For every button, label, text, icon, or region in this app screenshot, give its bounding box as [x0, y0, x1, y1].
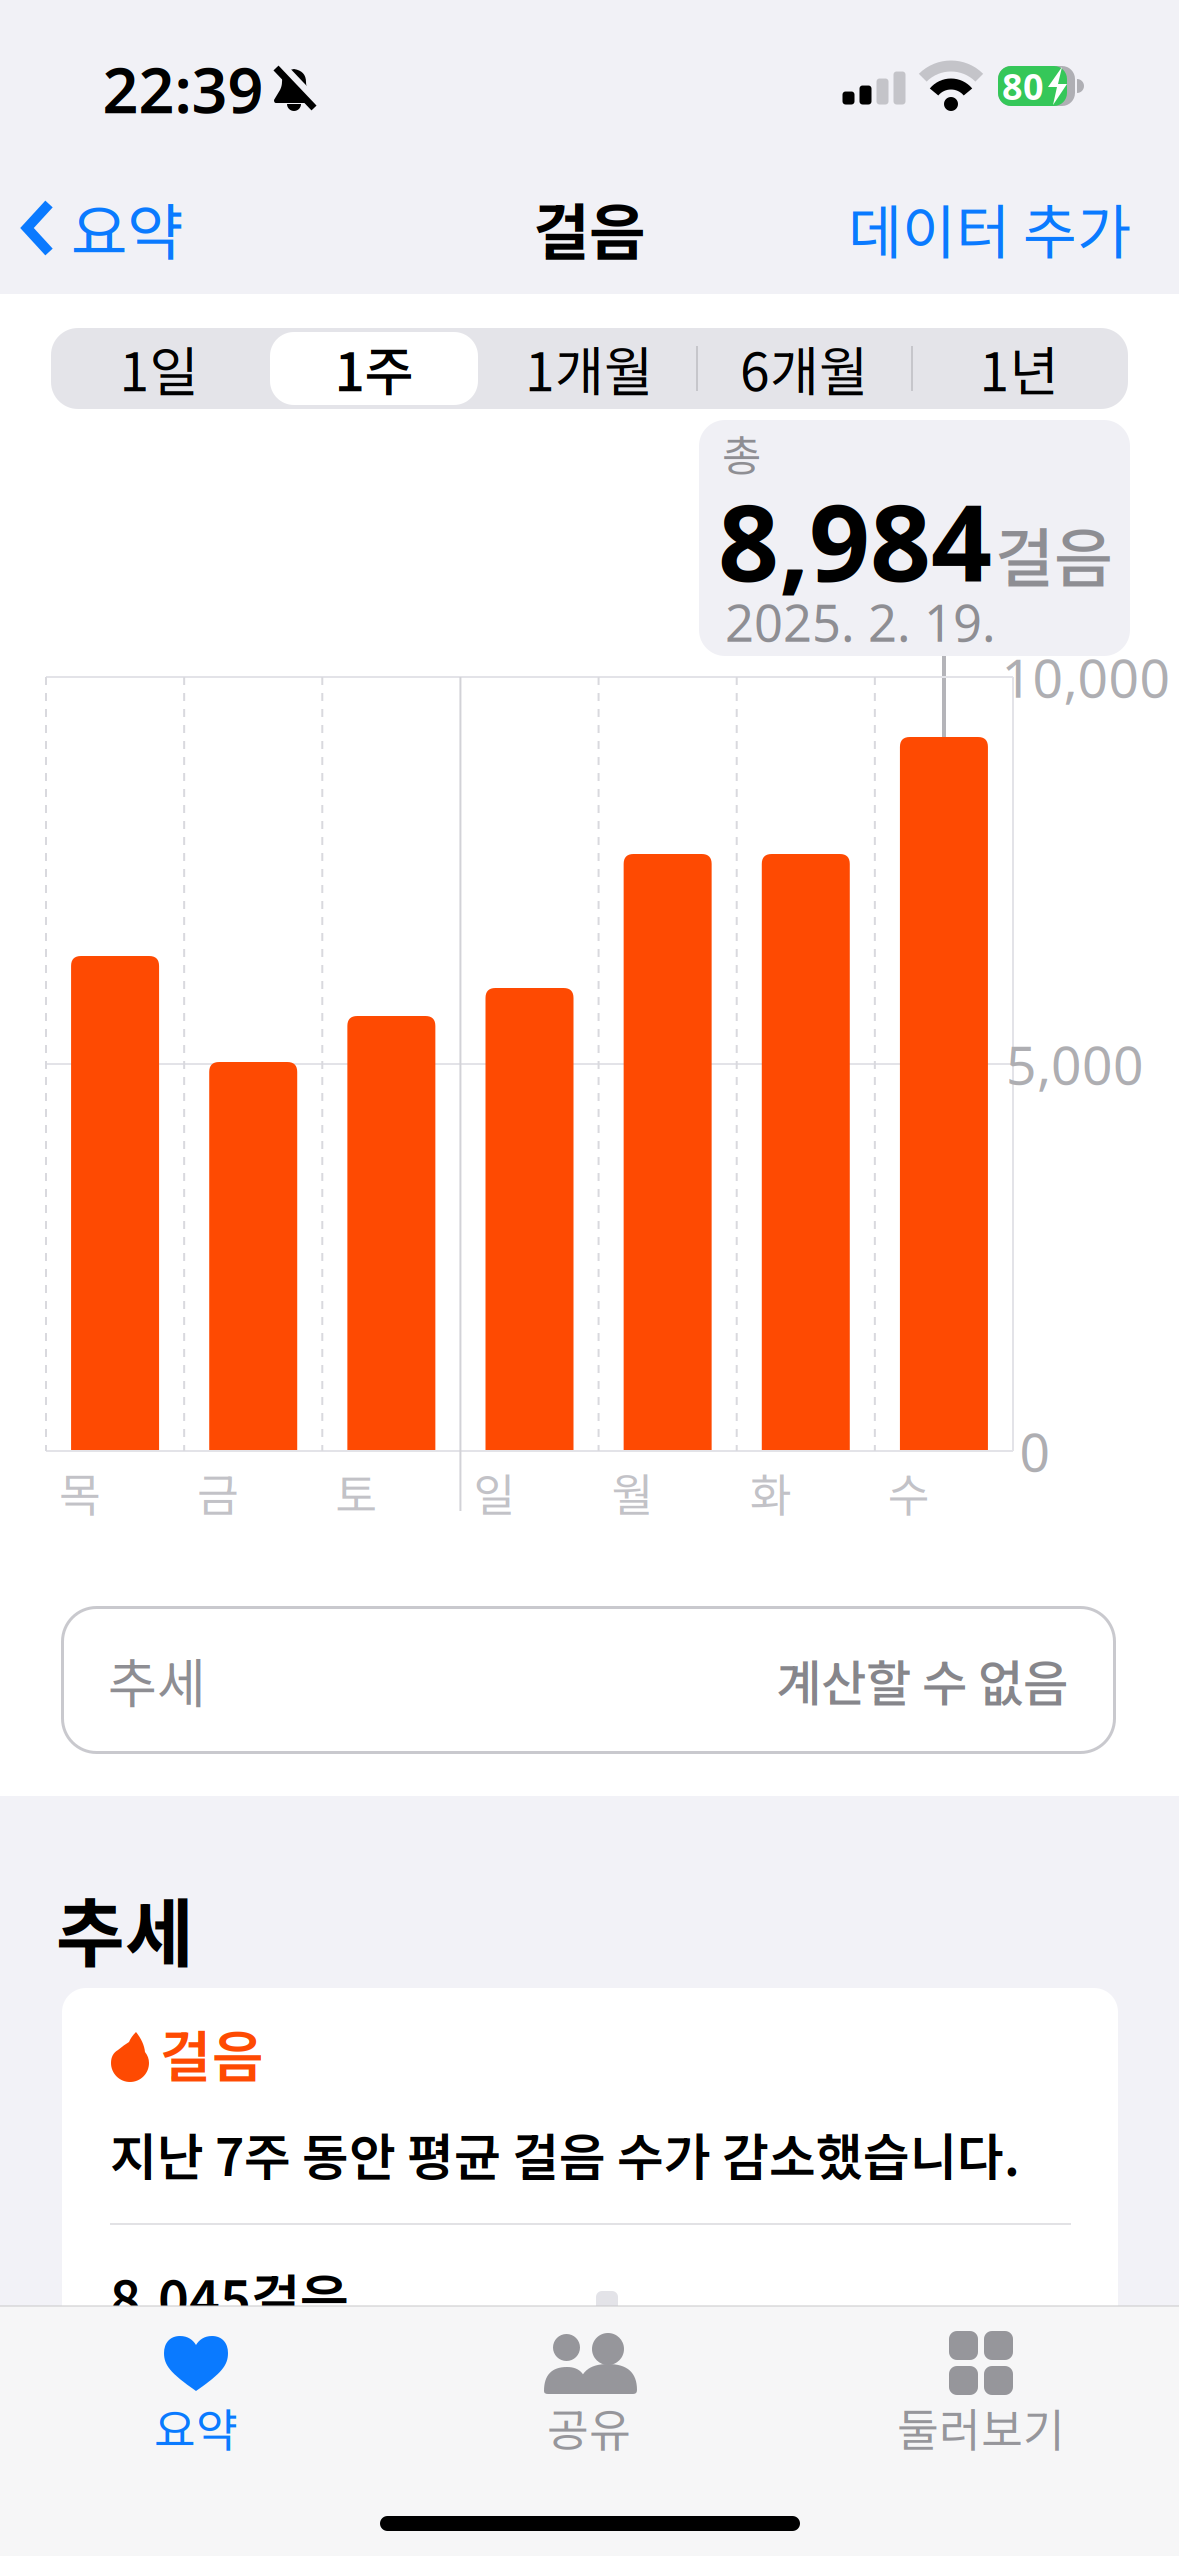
staticText: 화 — [750, 1459, 792, 1525]
button[interactable]: 1개월 — [499, 331, 679, 404]
staticText: 요약 — [71, 184, 183, 272]
button[interactable]: 둘러보기 — [883, 2306, 1079, 2456]
staticText: 80 — [1002, 62, 1044, 110]
staticText: 1주 — [334, 329, 413, 407]
button[interactable]: 공유 — [491, 2306, 687, 2456]
staticText: 일 — [473, 1459, 515, 1525]
button[interactable]: 1년 — [929, 331, 1109, 404]
staticText: 1일 — [119, 329, 198, 407]
staticText: 8,984 — [718, 469, 992, 611]
staticText: 걸음 — [160, 2012, 264, 2094]
staticText: 둘러보기 — [897, 2394, 1065, 2460]
staticText: 22:39 — [102, 47, 263, 131]
staticText: 추세 — [56, 1874, 194, 1982]
staticText: 5,000 — [1006, 1029, 1144, 1099]
button[interactable]: 1일 — [69, 331, 249, 404]
button[interactable]: 데이터 추가 — [711, 196, 1131, 260]
staticText: 총 — [722, 422, 761, 484]
button[interactable]: 요약 — [25, 184, 183, 272]
staticText: 금 — [197, 1459, 239, 1525]
staticText: 수 — [888, 1459, 930, 1525]
staticText: 계산할 수 없음 — [776, 1644, 1068, 1716]
staticText: 1년 — [979, 329, 1058, 407]
button[interactable]: 추세 — [61, 1606, 1116, 1754]
staticText: 토 — [335, 1459, 377, 1525]
staticText: 0 — [1019, 1416, 1050, 1486]
staticText: 지난 7주 동안 평균 걸음 수가 감소했습니다. — [110, 2117, 1020, 2191]
button[interactable]: 1주 — [270, 331, 478, 404]
button[interactable]: 6개월 — [714, 331, 894, 404]
staticText: 걸음 — [995, 507, 1113, 600]
staticText: 10,000 — [1001, 642, 1170, 712]
button[interactable]: 요약 — [98, 2306, 294, 2456]
staticText: 요약 — [154, 2394, 238, 2460]
staticText: 8,045걸음 — [110, 2257, 349, 2335]
staticText: 목 — [59, 1459, 101, 1525]
staticText: 공유 — [547, 2394, 631, 2460]
staticText: 2025. 2. 19. — [725, 588, 996, 656]
staticText: 데이터 추가 — [848, 185, 1131, 270]
staticText: 월 — [612, 1459, 654, 1525]
staticText: 추세 — [108, 1641, 206, 1719]
staticText: 6개월 — [740, 329, 868, 407]
staticText: 걸음 — [533, 184, 645, 272]
staticText: 1개월 — [525, 329, 653, 407]
